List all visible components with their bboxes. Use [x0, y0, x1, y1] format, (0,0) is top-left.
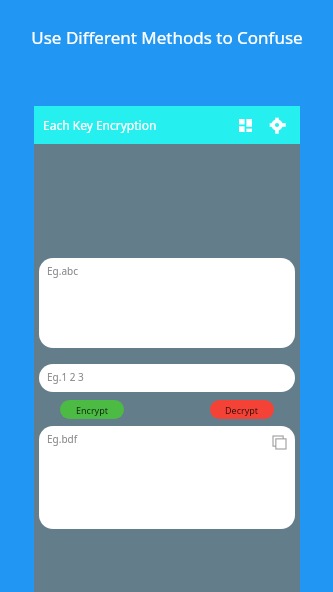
button[interactable]: Eg.abc [39, 258, 295, 348]
button[interactable]: Eg.1 2 3 [39, 364, 295, 392]
button[interactable]: Encrypt [60, 400, 124, 419]
staticText: Use Different Methods to Confuse [31, 26, 303, 49]
staticText: Each Key Encryption [43, 117, 157, 133]
staticText: Eg.1 2 3 [47, 370, 84, 384]
button[interactable]: Decrypt [210, 400, 274, 419]
staticText: Encrypt [76, 404, 108, 416]
button[interactable]: Copy [269, 432, 289, 452]
button[interactable]: Dashboard [232, 112, 258, 138]
staticText: Eg.bdf [47, 432, 78, 446]
button[interactable]: Settings [264, 112, 290, 138]
staticText: Eg.abc [47, 264, 78, 278]
button[interactable]: Eg.bdf [39, 426, 295, 529]
staticText: Decrypt [225, 404, 259, 416]
